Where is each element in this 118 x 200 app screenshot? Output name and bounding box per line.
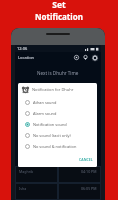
staticText: Notification for Dhuhr [32,87,74,92]
staticText: Alarm sound [33,111,57,116]
button[interactable]: Compass [72,53,81,62]
button[interactable]: Athan sound [18,97,97,108]
staticText: No sound (tacit only) [33,133,71,138]
staticText: Set [52,0,66,11]
button[interactable]: 04:10 PM [59,167,100,182]
button[interactable]: 06:05 PM [59,184,100,199]
staticText: Maghrib [19,169,34,174]
button[interactable]: Isha [16,184,57,199]
staticText: No sound & notification [33,144,77,149]
button[interactable]: Maghrib [16,167,57,182]
staticText: Location [18,55,35,60]
button[interactable]: Place [81,53,90,62]
staticText: 12:06 [17,46,28,51]
staticText: CANCEL [79,157,93,162]
button[interactable]: CANCEL [75,156,97,163]
staticText: 04:10 PM [81,169,97,174]
staticText: Athan sound [33,100,57,105]
button[interactable]: Notification sound [18,119,97,130]
staticText: 06:05 PM [81,186,97,191]
button[interactable]: No sound (tacit only) [18,130,97,141]
staticText: Notification sound [33,122,67,127]
button[interactable]: Alarm sound [18,108,97,119]
button[interactable]: No sound & notification [18,141,97,152]
button[interactable]: Settings [90,53,99,62]
staticText: Notification [35,11,83,22]
staticText: Isha [19,186,27,191]
staticText: Next is Dhuhr Time [37,70,79,76]
